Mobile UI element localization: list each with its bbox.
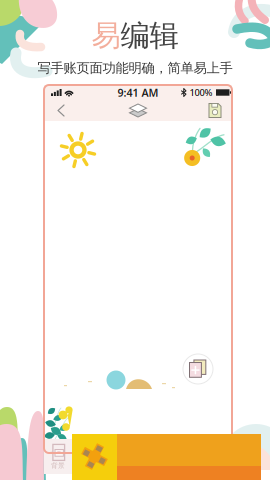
button[interactable]: Back <box>49 100 73 121</box>
button[interactable]: Layers <box>125 100 151 121</box>
staticText: 写手账页面功能明确，简单易上手 <box>37 60 232 76</box>
button[interactable]: Add page <box>182 353 214 385</box>
staticText: 背景 <box>51 461 65 470</box>
button[interactable]: 背景 <box>44 443 72 471</box>
staticText: 易 <box>91 18 120 54</box>
staticText: 100% <box>189 86 212 99</box>
staticText: 9:41 AM <box>117 85 158 100</box>
button[interactable]: Save <box>203 100 227 121</box>
staticText: 编辑 <box>120 18 178 54</box>
